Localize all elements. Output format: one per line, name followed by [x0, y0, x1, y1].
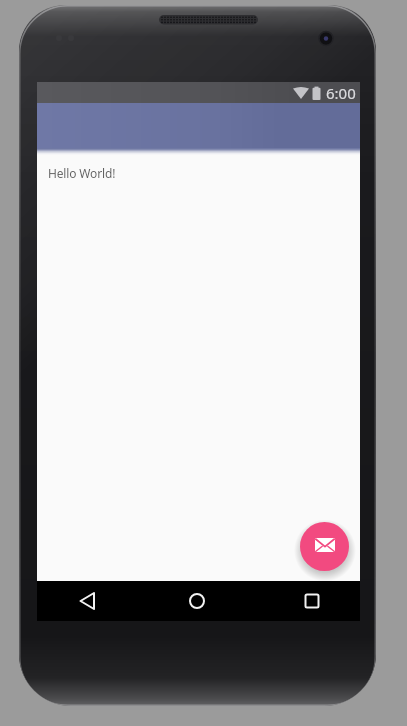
button[interactable] — [300, 522, 349, 571]
staticText: 6:00 — [326, 83, 356, 103]
button[interactable] — [183, 587, 211, 615]
staticText: Hello World! — [48, 165, 116, 181]
button[interactable] — [73, 587, 101, 615]
button[interactable] — [298, 587, 326, 615]
